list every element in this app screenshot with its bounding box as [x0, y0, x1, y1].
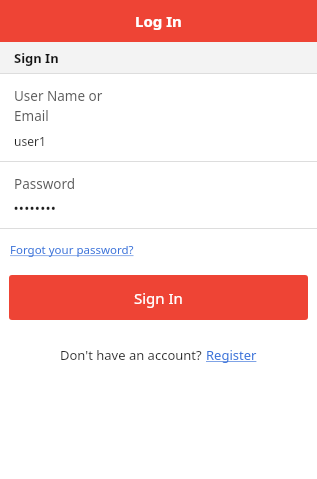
button[interactable]: User Name or Email	[0, 74, 317, 161]
button[interactable]: Sign In	[9, 275, 308, 320]
button[interactable]: Forgot your password?	[0, 229, 144, 271]
staticText: Register	[206, 346, 257, 364]
staticText: Log In	[135, 11, 182, 31]
button[interactable]: Password	[0, 162, 317, 228]
staticText: Password	[14, 175, 76, 193]
staticText: user1	[14, 133, 46, 149]
staticText: Sign In	[134, 288, 183, 308]
button[interactable]: Register	[206, 346, 257, 364]
staticText: Sign In	[14, 49, 59, 67]
staticText: Don't have an account?	[60, 346, 206, 364]
staticText: ••••••••	[14, 200, 57, 215]
staticText: User Name or Email	[14, 87, 103, 125]
staticText: Forgot your password?	[10, 242, 134, 258]
